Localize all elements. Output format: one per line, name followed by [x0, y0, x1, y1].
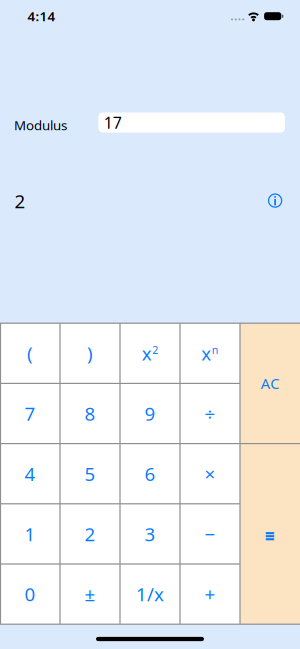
staticText: )	[87, 341, 93, 366]
staticText: 5	[84, 461, 95, 486]
staticText: x	[142, 341, 152, 366]
button[interactable]: 9	[120, 383, 180, 444]
button[interactable]: Modulus	[98, 112, 285, 132]
staticText: 4:14	[27, 7, 55, 25]
button[interactable]: 0	[0, 564, 60, 624]
button[interactable]: ÷	[180, 383, 240, 444]
staticText: x	[201, 341, 211, 366]
button[interactable]: 4	[0, 444, 60, 504]
button[interactable]: )	[60, 323, 120, 383]
button[interactable]: 1/x	[120, 564, 180, 624]
staticText: 4	[24, 461, 35, 486]
staticText: ÷	[204, 401, 215, 426]
button[interactable]: 1	[0, 504, 60, 564]
button[interactable]: Menu	[240, 444, 300, 624]
button[interactable]: 2	[60, 504, 120, 564]
staticText: 2	[84, 521, 95, 546]
button[interactable]: x	[120, 323, 180, 383]
staticText: 6	[144, 461, 155, 486]
button[interactable]: +	[180, 564, 240, 624]
staticText: 2	[14, 189, 25, 213]
staticText: AC	[261, 374, 279, 393]
staticText: 7	[24, 401, 35, 426]
staticText: n	[212, 343, 219, 357]
button[interactable]: ±	[60, 564, 120, 624]
button[interactable]: 3	[120, 504, 180, 564]
staticText: 1	[24, 521, 35, 546]
button[interactable]: Info	[265, 191, 285, 211]
button[interactable]: 8	[60, 383, 120, 444]
staticText: 2	[152, 343, 158, 357]
button[interactable]: 5	[60, 444, 120, 504]
button[interactable]: All Clear	[240, 323, 300, 444]
staticText: ×	[204, 461, 215, 486]
staticText: 17	[104, 112, 122, 133]
button[interactable]: −	[180, 504, 240, 564]
button[interactable]: x	[180, 323, 240, 383]
button[interactable]: ×	[180, 444, 240, 504]
staticText: 1/x	[136, 582, 164, 606]
staticText: 3	[144, 521, 155, 546]
staticText: +	[204, 582, 215, 606]
staticText: 0	[24, 582, 35, 606]
staticText: ±	[84, 582, 95, 606]
button[interactable]: (	[0, 323, 60, 383]
staticText: Modulus	[14, 116, 67, 134]
staticText: 8	[84, 401, 95, 426]
button[interactable]: 7	[0, 383, 60, 444]
staticText: −	[204, 521, 215, 546]
button[interactable]: 6	[120, 444, 180, 504]
staticText: 9	[144, 401, 155, 426]
staticText: (	[27, 341, 33, 366]
